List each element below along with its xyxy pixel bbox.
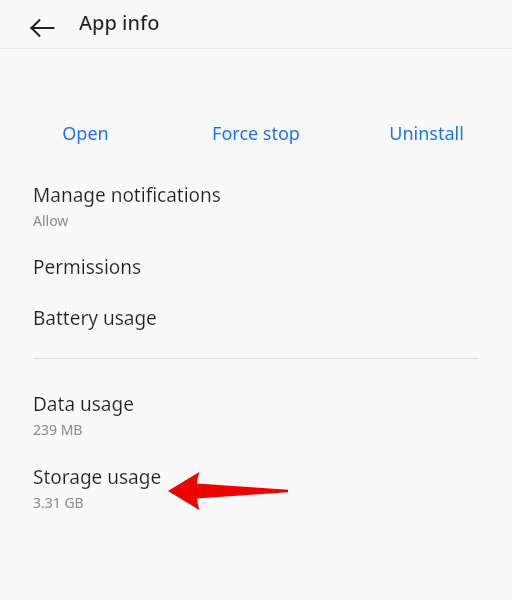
staticText: Data usage xyxy=(33,391,134,417)
staticText: Permissions xyxy=(33,254,142,280)
staticText: 239 MB xyxy=(33,420,83,439)
button[interactable]: Battery usage xyxy=(0,305,512,331)
staticText: Force stop xyxy=(212,121,300,146)
staticText: Storage usage xyxy=(33,464,162,490)
button[interactable]: Manage notifications xyxy=(0,182,512,230)
button[interactable]: Uninstall xyxy=(341,116,512,150)
staticText: Open xyxy=(62,121,109,146)
staticText: Allow xyxy=(33,211,69,230)
button[interactable]: Data usage xyxy=(0,391,512,439)
button[interactable]: Permissions xyxy=(0,254,512,280)
staticText: Battery usage xyxy=(33,305,157,331)
staticText: Uninstall xyxy=(389,121,464,146)
button[interactable]: Back xyxy=(18,4,66,52)
staticText: App info xyxy=(79,9,160,36)
staticText: Manage notifications xyxy=(33,182,221,208)
staticText: 3.31 GB xyxy=(33,493,84,512)
button[interactable]: Open xyxy=(0,116,170,150)
button[interactable]: Force stop xyxy=(170,116,341,150)
button[interactable]: Storage usage xyxy=(0,464,512,512)
